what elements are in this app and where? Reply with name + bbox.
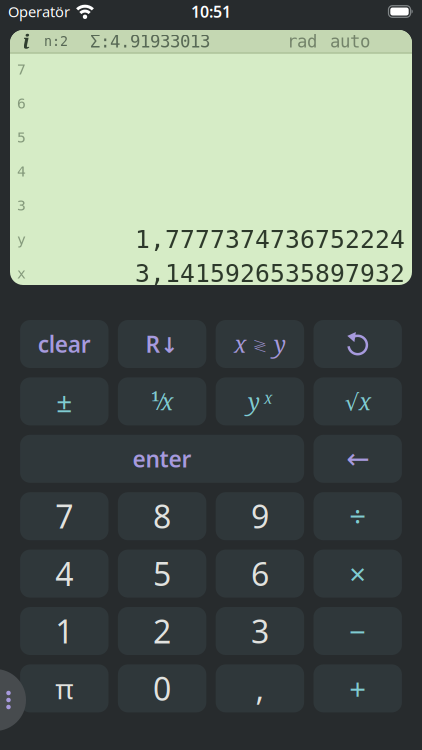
staticText: 4 [55,552,73,595]
button[interactable]: π [20,664,108,712]
staticText: 1,7777374736752224 [135,225,405,254]
button[interactable]: x ≷ y [216,320,304,368]
staticText: √x [345,386,371,416]
staticText: 7 [17,61,26,78]
staticText: 3 [251,610,269,652]
staticText: ± [56,383,72,420]
button[interactable]: 0 [118,664,206,712]
staticText: − [349,611,366,650]
staticText: y [17,231,26,248]
staticText: 4 [17,163,26,180]
button[interactable]: 3 [216,607,304,655]
button[interactable]: √x [313,377,402,425]
button[interactable]: ÷ [313,492,402,540]
staticText: n:2 [44,34,68,49]
button[interactable]: y x [216,377,304,425]
staticText: 5 [17,129,26,146]
button[interactable]: + [313,664,402,712]
staticText: 0 [153,667,171,710]
staticText: 10:51 [191,1,231,22]
button[interactable]: 9 [216,492,304,540]
button[interactable]: 8 [118,492,206,540]
staticText: 3 [17,197,26,214]
button[interactable]: 4 [20,550,108,598]
button[interactable]: enter [20,435,304,483]
button[interactable]: , [216,664,304,712]
staticText: enter [133,444,192,474]
staticText: 5 [153,552,171,595]
staticText: , [255,667,264,710]
button[interactable]: 7 [20,492,108,540]
button[interactable]: ¹⁄x [118,377,206,425]
staticText: clear [38,329,91,359]
button[interactable]: Menu [0,669,31,731]
staticText: auto [330,31,370,52]
staticText: ¹⁄x [151,386,173,416]
staticText: + [349,669,366,708]
staticText: 8 [153,495,171,537]
staticText: x [17,265,26,282]
button[interactable]: ± [20,377,108,425]
button[interactable]: 5 [118,550,206,598]
button[interactable]: Undo [313,320,402,368]
staticText: 2 [153,610,171,652]
staticText: i [22,27,29,55]
staticText: 3,1415926535897932 [135,259,405,288]
button[interactable]: R↓ [118,320,206,368]
staticText: Σ:4.91933013 [90,31,210,52]
button[interactable]: 1 [20,607,108,655]
staticText: x ≷ y [234,329,286,359]
staticText: 7 [55,495,73,537]
staticText: 6 [251,552,269,595]
button[interactable]: 2 [118,607,206,655]
button[interactable]: clear [20,320,108,368]
staticText: 6 [17,95,26,112]
staticText: Operatör [8,2,70,21]
staticText: 1 [55,610,73,652]
staticText: 9 [251,495,269,537]
button[interactable]: − [313,607,402,655]
staticText: ÷ [349,497,366,536]
button[interactable]: 6 [216,550,304,598]
staticText: R↓ [146,329,179,359]
staticText: ← [346,443,369,475]
staticText: π [55,670,73,707]
staticText: y x [248,386,272,416]
staticText: rad [287,31,317,52]
button[interactable]: Backspace [313,435,402,483]
staticText: × [349,554,366,593]
button[interactable]: × [313,550,402,598]
